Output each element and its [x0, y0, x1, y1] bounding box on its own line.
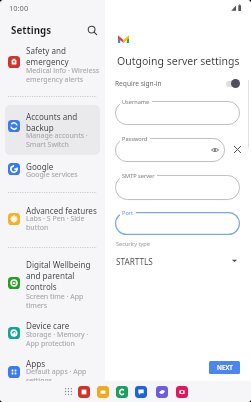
button[interactable] [5, 354, 100, 388]
button[interactable] [5, 202, 100, 246]
button[interactable]: App 4 [135, 386, 147, 398]
staticText: Device care [26, 320, 70, 331]
button[interactable]: App 3 [116, 386, 128, 398]
button[interactable]: Clear password [233, 145, 242, 154]
button[interactable]: All apps [63, 386, 74, 397]
staticText: Digital Wellbeing and parental controls [26, 259, 91, 292]
button[interactable]: Search [85, 23, 99, 37]
button[interactable] [5, 105, 100, 155]
staticText: Settings [11, 24, 52, 37]
button[interactable]: Show password [211, 146, 219, 154]
staticText: Outgoing server settings [117, 54, 240, 68]
button[interactable] [5, 315, 100, 351]
button[interactable]: App 6 [176, 386, 188, 398]
staticText: Password [122, 135, 148, 143]
button[interactable] [115, 138, 225, 162]
staticText: Screen time · App timers [26, 292, 84, 310]
staticText: Manage accounts · Smart Switch [26, 131, 88, 149]
staticText: Default apps · App settings [26, 367, 87, 385]
staticText: SMTP server [122, 172, 155, 180]
button[interactable] [5, 40, 100, 92]
staticText: Security type [116, 240, 150, 248]
staticText: Safety and emergency [26, 45, 69, 67]
staticText: Advanced features [26, 205, 97, 216]
staticText: STARTTLS [116, 256, 153, 267]
button[interactable]: Select security type [230, 256, 239, 265]
staticText: Storage · Memory · App protection [26, 330, 89, 348]
staticText: NEXT [217, 363, 233, 372]
staticText: Port [122, 209, 134, 217]
staticText: 10:00 [9, 3, 29, 13]
button[interactable]: App 5 [156, 386, 168, 398]
staticText: Accounts and backup [26, 111, 78, 133]
staticText: Google services [26, 170, 78, 180]
staticText: Google [26, 161, 54, 172]
staticText: Username [122, 98, 150, 106]
button[interactable] [5, 157, 100, 191]
button[interactable]: Require sign-in [226, 78, 241, 88]
staticText: Apps [26, 358, 46, 369]
button[interactable]: App 2 [97, 386, 109, 398]
button[interactable] [115, 175, 240, 200]
staticText: Medical info · Wireless emergency alerts [26, 66, 100, 84]
staticText: Require sign-in [115, 79, 162, 88]
button[interactable]: NEXT [209, 361, 240, 374]
staticText: Labs · S Pen · Side button [26, 214, 85, 232]
button[interactable]: App 1 [78, 386, 90, 398]
button[interactable] [115, 101, 240, 125]
button[interactable] [115, 212, 240, 235]
button[interactable] [5, 254, 100, 312]
